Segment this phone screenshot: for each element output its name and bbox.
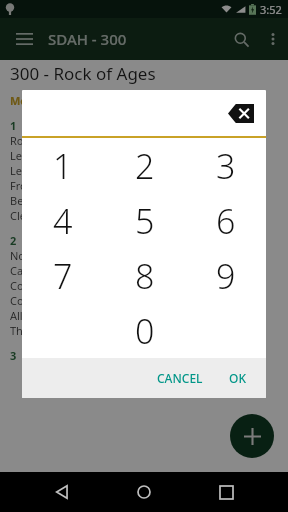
staticText: Can fulfill Thy law's demands; [10, 263, 163, 278]
button[interactable]: Home [124, 472, 164, 512]
button[interactable]: 1 [22, 138, 104, 193]
button[interactable]: More options [258, 24, 288, 54]
staticText: 8 [135, 253, 155, 299]
staticText: Be of sin the double cure, [10, 193, 142, 208]
staticText: 0 [135, 308, 155, 354]
staticText: OK [229, 370, 246, 386]
staticText: 2 [135, 143, 155, 189]
button[interactable]: 7 [22, 248, 104, 303]
button[interactable]: Back [42, 472, 82, 512]
staticText: Not the labors of my hands [10, 248, 151, 263]
staticText: 1 [53, 143, 73, 189]
staticText: 1 [10, 118, 17, 133]
staticText: Moody [10, 93, 48, 108]
button[interactable]: CANCEL [149, 364, 211, 392]
staticText: Thou must save, and Thou alone. [10, 323, 181, 338]
button[interactable]: Search [224, 22, 258, 56]
button[interactable]: 2 [104, 138, 185, 193]
button[interactable]: 6 [185, 193, 266, 248]
staticText: 5 [135, 198, 155, 244]
staticText: Let me hide myself in Thee; [10, 148, 152, 163]
staticText: Rock of Ages, cleft for me, [10, 133, 145, 148]
staticText: 4 [53, 198, 73, 244]
staticText: 6 [216, 198, 236, 244]
button[interactable]: 5 [104, 193, 185, 248]
button[interactable]: 0 [104, 303, 185, 358]
staticText: CANCEL [157, 370, 203, 386]
staticText: Cleanse me from its guilt and power. [10, 208, 198, 223]
button[interactable]: 4 [22, 193, 104, 248]
staticText: 3:52 [260, 2, 282, 17]
button[interactable]: Recent apps [206, 472, 246, 512]
staticText: All for sin could not atone, [10, 308, 146, 323]
staticText: Could my zeal no respite know, [10, 278, 170, 293]
staticText: Could my tears forever flow, [10, 293, 155, 308]
staticText: 2 [10, 233, 17, 248]
button[interactable]: OK [221, 364, 254, 392]
staticText: From Thy wounded side which flowed, [10, 178, 208, 193]
staticText: 7 [53, 253, 73, 299]
button[interactable]: Open navigation menu [8, 23, 40, 55]
button[interactable]: Backspace [226, 101, 256, 125]
staticText: 3 [216, 143, 236, 189]
button[interactable]: Add [230, 414, 274, 458]
staticText: SDAH - 300 [48, 29, 127, 49]
staticText: 300 - Rock of Ages [10, 62, 156, 85]
staticText: Let the water and the blood, [10, 163, 157, 178]
button[interactable]: 9 [185, 248, 266, 303]
button[interactable]: 8 [104, 248, 185, 303]
staticText: 9 [216, 253, 236, 299]
button[interactable]: 3 [185, 138, 266, 193]
staticText: 3 [10, 348, 17, 363]
